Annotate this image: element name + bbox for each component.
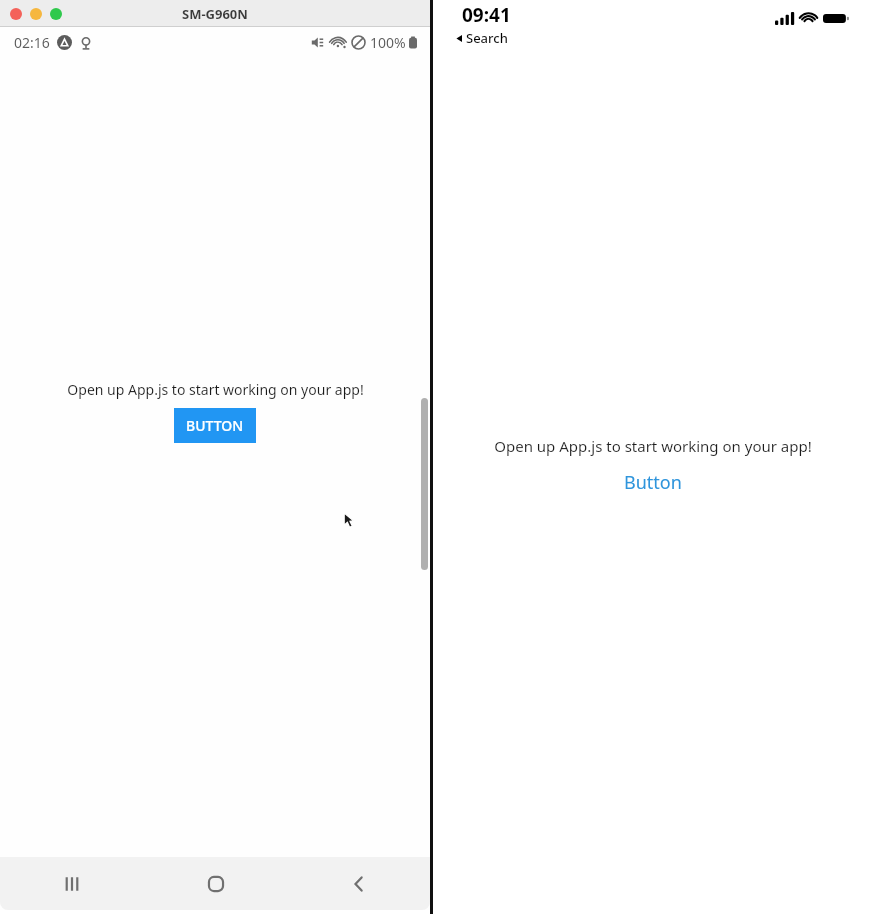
staticText: SM-G960N — [182, 5, 248, 23]
staticText: 100% — [370, 33, 406, 52]
button[interactable]: Button — [618, 468, 688, 497]
staticText: Search — [466, 29, 508, 47]
button[interactable]: Back — [287, 857, 430, 910]
button[interactable]: Search — [455, 29, 508, 47]
staticText: BUTTON — [186, 416, 244, 435]
staticText: Open up App.js to start working on your … — [494, 436, 812, 456]
staticText: Open up App.js to start working on your … — [67, 380, 364, 399]
staticText: Button — [624, 470, 682, 495]
button[interactable]: BUTTON — [174, 408, 256, 443]
staticText: 09:41 — [462, 2, 511, 28]
button[interactable]: Home — [144, 857, 287, 910]
button[interactable]: Recent apps — [0, 857, 144, 910]
staticText: 02:16 — [14, 33, 50, 52]
